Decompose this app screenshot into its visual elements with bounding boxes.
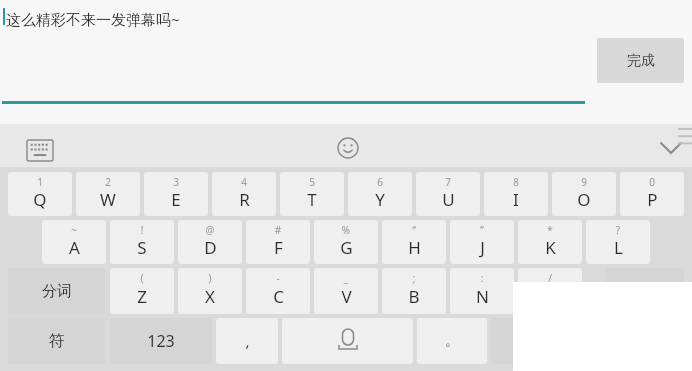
staticText: 完成 xyxy=(627,52,655,70)
button[interactable]: / xyxy=(518,268,582,314)
button[interactable]: ) xyxy=(178,268,242,314)
button[interactable]: 1 xyxy=(8,172,72,216)
staticText: 7 xyxy=(416,175,480,216)
button[interactable]: Hide keyboard xyxy=(656,135,686,161)
button[interactable]: 这么精彩不来一发弹幕吗~ xyxy=(6,9,180,29)
staticText: 0 xyxy=(620,175,684,216)
staticText: W xyxy=(100,188,116,211)
button[interactable]: 完成 xyxy=(597,38,684,83)
staticText: X xyxy=(205,285,215,308)
button[interactable]: @ xyxy=(178,220,242,264)
staticText: _ xyxy=(314,271,378,314)
staticText: Q xyxy=(33,188,47,211)
button[interactable]: Voice input xyxy=(282,318,413,364)
staticText: E xyxy=(171,188,181,211)
staticText: ~ xyxy=(42,223,106,264)
button[interactable]: ~ xyxy=(42,220,106,264)
staticText: 2 xyxy=(76,175,140,216)
button[interactable]: 9 xyxy=(552,172,616,216)
staticText: ) xyxy=(178,271,242,314)
staticText: 6 xyxy=(348,175,412,216)
staticText: G xyxy=(340,236,353,259)
staticText: 5 xyxy=(280,175,344,216)
button[interactable]: 5 xyxy=(280,172,344,216)
staticText: 符 xyxy=(49,331,65,351)
button[interactable]: Delete xyxy=(606,268,684,314)
staticText: D xyxy=(204,236,217,259)
staticText: C xyxy=(273,285,284,308)
button[interactable]: ! xyxy=(110,220,174,264)
button[interactable]: ( xyxy=(110,268,174,314)
staticText: R xyxy=(239,188,250,211)
button[interactable]: Emoji xyxy=(335,135,361,161)
staticText: N xyxy=(476,285,489,308)
staticText: O xyxy=(577,188,591,211)
staticText: ” xyxy=(450,223,514,264)
staticText: 8 xyxy=(484,175,548,216)
staticText: % xyxy=(314,223,378,264)
button[interactable]: 。 xyxy=(417,318,487,364)
staticText: ( xyxy=(110,271,174,314)
staticText: A xyxy=(69,236,80,259)
button[interactable]: 2 xyxy=(76,172,140,216)
button[interactable]: 0 xyxy=(620,172,684,216)
button[interactable]: ; xyxy=(382,268,446,314)
staticText: ? xyxy=(586,223,650,264)
staticText: S xyxy=(137,236,147,259)
staticText: F xyxy=(274,236,283,259)
staticText: 。 xyxy=(445,332,459,350)
staticText: V xyxy=(341,285,352,308)
button[interactable]: ” xyxy=(450,220,514,264)
button[interactable]: 6 xyxy=(348,172,412,216)
staticText: T xyxy=(307,188,317,211)
staticText: * xyxy=(518,223,582,264)
staticText: 123 xyxy=(147,330,175,352)
staticText: Y xyxy=(375,188,385,211)
staticText: ; xyxy=(382,271,446,314)
staticText: H xyxy=(408,236,421,259)
button[interactable]: 分词 xyxy=(8,268,105,314)
button[interactable]: 4 xyxy=(212,172,276,216)
button[interactable]: 7 xyxy=(416,172,480,216)
staticText: ! xyxy=(110,223,174,264)
button[interactable]: , xyxy=(216,318,278,364)
staticText: / xyxy=(518,271,582,314)
button[interactable]: : xyxy=(450,268,514,314)
button[interactable]: - xyxy=(246,268,310,314)
staticText: B xyxy=(408,285,420,308)
staticText: 4 xyxy=(212,175,276,216)
staticText: 分词 xyxy=(42,282,72,301)
button[interactable]: * xyxy=(518,220,582,264)
button[interactable]: 123 xyxy=(110,318,212,364)
staticText: L xyxy=(614,236,623,259)
button[interactable]: _ xyxy=(314,268,378,314)
staticText: U xyxy=(442,188,455,211)
staticText: “ xyxy=(382,223,446,264)
button[interactable]: 符 xyxy=(8,318,105,364)
button[interactable]: # xyxy=(246,220,310,264)
button[interactable]: Enter xyxy=(491,318,561,364)
button[interactable]: 8 xyxy=(484,172,548,216)
staticText: I xyxy=(513,188,519,211)
staticText: , xyxy=(245,331,250,351)
button[interactable]: % xyxy=(314,220,378,264)
staticText: @ xyxy=(178,223,242,264)
staticText: P xyxy=(647,188,658,211)
staticText: 3 xyxy=(144,175,208,216)
staticText: Z xyxy=(137,285,147,308)
button[interactable]: Keyboard xyxy=(24,136,56,164)
staticText: - xyxy=(246,271,310,314)
button[interactable]: 3 xyxy=(144,172,208,216)
staticText: # xyxy=(246,223,310,264)
staticText: 9 xyxy=(552,175,616,216)
button[interactable]: ? xyxy=(586,220,650,264)
staticText: 1 xyxy=(8,175,72,216)
staticText: J xyxy=(480,236,485,259)
staticText: K xyxy=(545,236,556,259)
button[interactable]: “ xyxy=(382,220,446,264)
staticText: : xyxy=(450,271,514,314)
